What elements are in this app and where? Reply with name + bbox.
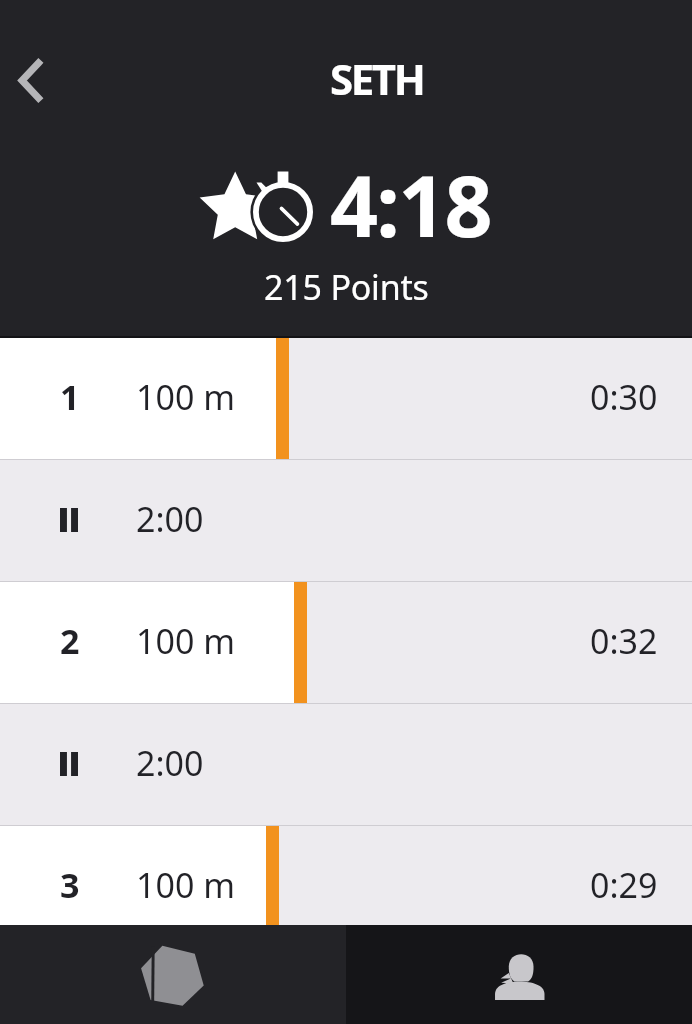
staticText: 4:18	[330, 147, 491, 261]
staticText: 2:00	[136, 740, 204, 786]
staticText: 100 m	[136, 618, 235, 664]
staticText: 100 m	[136, 862, 235, 908]
staticText: 100 m	[136, 374, 235, 420]
staticText: 1	[60, 374, 80, 420]
staticText: 0:32	[590, 618, 658, 664]
button[interactable]: 2	[0, 582, 692, 704]
button[interactable]: Profile	[346, 925, 692, 1024]
staticText: 215 Points	[264, 264, 429, 310]
staticText: 0:29	[590, 862, 658, 908]
button[interactable]: 2:00	[0, 704, 692, 826]
staticText: 0:30	[590, 374, 658, 420]
staticText: 2:00	[136, 961, 204, 1007]
staticText: 2	[60, 618, 80, 664]
button[interactable]: 2:00	[0, 460, 692, 582]
button[interactable]: 2:00	[0, 948, 692, 1024]
button[interactable]: Workouts	[0, 925, 346, 1024]
staticText: 3	[60, 862, 80, 908]
button[interactable]: Back	[0, 0, 80, 120]
button[interactable]: 3	[0, 826, 692, 948]
staticText: SETH	[330, 50, 424, 107]
button[interactable]: 1	[0, 338, 692, 460]
staticText: 2:00	[136, 496, 204, 542]
